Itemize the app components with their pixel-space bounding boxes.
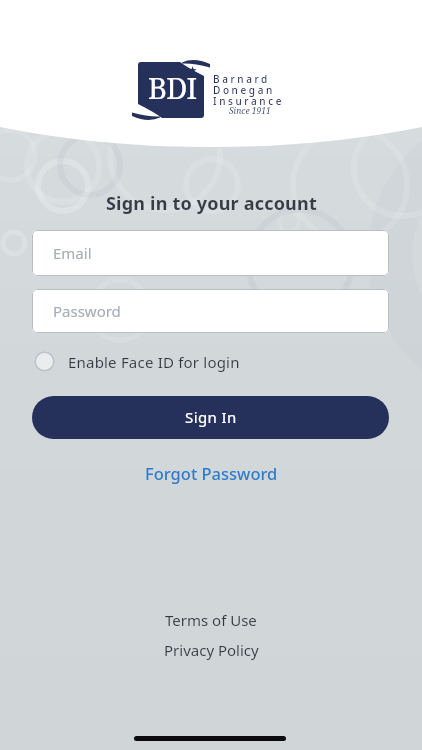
- button[interactable]: Privacy Policy: [164, 640, 259, 660]
- staticText: Password: [53, 301, 121, 321]
- button[interactable]: Email: [32, 230, 389, 276]
- staticText: Since 1911: [229, 105, 271, 117]
- staticText: Insurance: [213, 94, 285, 108]
- button[interactable]: Sign In: [32, 396, 389, 439]
- staticText: BDI: [148, 68, 197, 107]
- staticText: Email: [53, 243, 92, 263]
- staticText: Sign in to your account: [106, 191, 317, 216]
- staticText: Sign In: [185, 407, 237, 427]
- button[interactable]: Forgot Password: [145, 462, 278, 484]
- staticText: Enable Face ID for login: [68, 352, 240, 372]
- button[interactable]: Enable Face ID for login: [34, 351, 240, 372]
- staticText: Barnard: [213, 72, 270, 86]
- button[interactable]: Password: [32, 289, 389, 333]
- button[interactable]: Terms of Use: [165, 610, 257, 630]
- staticText: Donegan: [213, 83, 275, 97]
